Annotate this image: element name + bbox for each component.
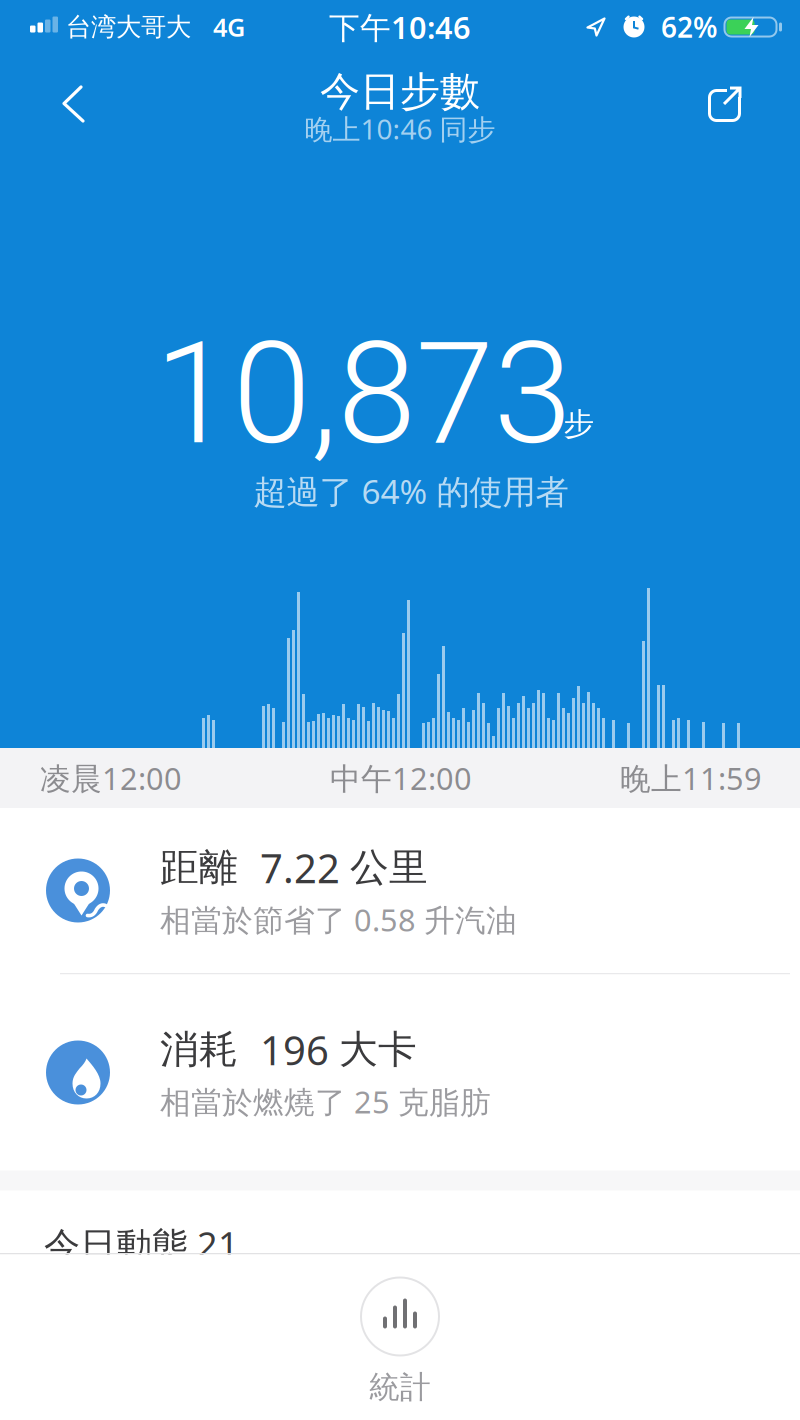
staticText: 相當於節省了 0.58 升汽油 [160,899,517,940]
staticText: 今日動態 21 [44,1220,239,1268]
staticText: 相當於燃燒了 25 克脂肪 [160,1081,491,1122]
button[interactable] [0,62,85,123]
staticText: 今日步數 [320,67,480,116]
staticText: 消耗 [160,1026,238,1073]
button[interactable] [708,63,800,122]
staticText: 62% [661,8,718,46]
staticText: 公里 [350,844,428,891]
staticText: 7.22 [260,841,340,894]
staticText: 晚上10:46 同步 [304,110,495,147]
staticText: 下午10:46 [329,7,471,47]
staticText: 196 [260,1023,329,1076]
staticText: 距離 [160,844,238,891]
button[interactable]: 統計 [360,1254,440,1406]
button[interactable]: 距離 [0,808,800,973]
staticText: 中午12:00 [330,758,472,798]
staticText: 凌晨12:00 [40,758,182,798]
staticText: 台湾大哥大 [66,11,191,42]
staticText: 10,873 [154,311,571,477]
staticText: 晚上11:59 [620,758,762,798]
staticText: 大卡 [339,1026,417,1073]
staticText: 超過了 64% 的使用者 [253,469,568,513]
staticText: 4G [213,10,245,44]
button[interactable]: 消耗 [0,974,800,1170]
staticText: 統計 [369,1368,431,1406]
staticText: 步 [563,405,594,443]
